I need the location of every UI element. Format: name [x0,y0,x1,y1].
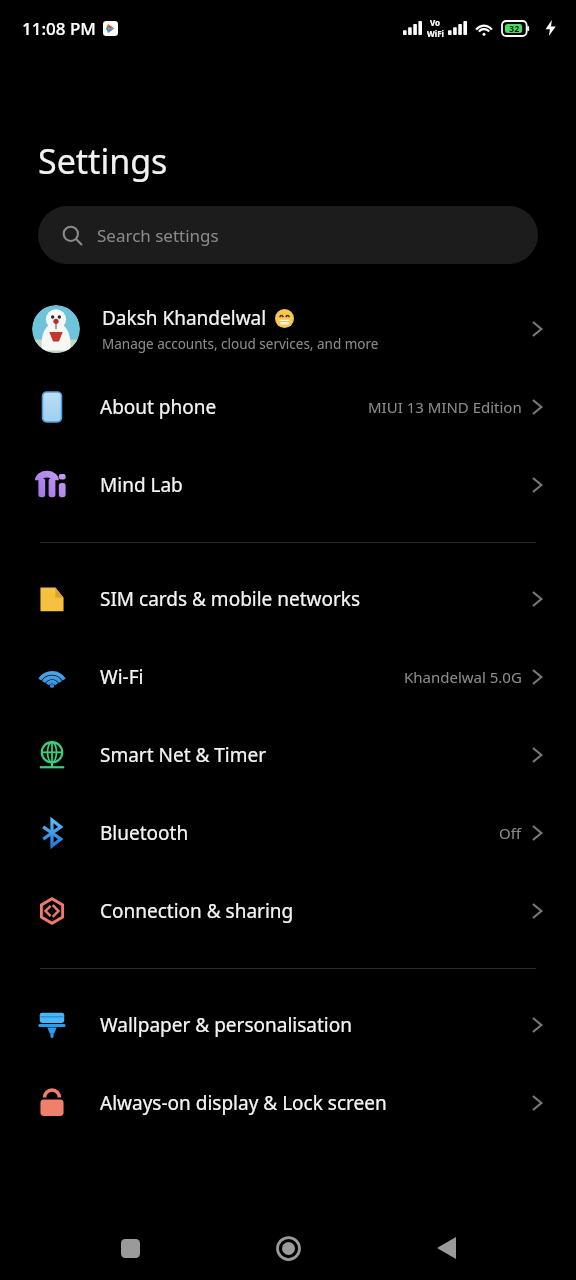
staticText: Manage accounts, cloud services, and mor… [102,335,379,353]
staticText: Wi-Fi [100,664,144,690]
staticText: Off [499,823,522,843]
staticText: Wallpaper & personalisation [100,1012,352,1038]
staticText: Bluetooth [100,820,189,846]
staticText: MIUI 13 MIND Edition [368,397,522,417]
staticText: About phone [100,394,217,420]
staticText: Settings [38,138,168,184]
staticText: Khandelwal 5.0G [404,667,522,687]
staticText: Vo [430,17,441,28]
button[interactable]: Bluetooth [0,794,576,872]
button[interactable]: SIM cards & mobile networks [0,560,576,638]
staticText: Mind Lab [100,472,183,498]
button[interactable]: Mind Lab [0,446,576,524]
staticText: 32 [509,22,520,34]
button[interactable]: Daksh Khandelwal [0,290,576,368]
button[interactable]: Home [260,1220,316,1276]
button[interactable]: Back [418,1220,474,1276]
staticText: Search settings [97,224,219,247]
button[interactable]: Connection & sharing [0,872,576,950]
staticText: SIM cards & mobile networks [100,586,361,612]
button[interactable]: Smart Net & Timer [0,716,576,794]
button[interactable]: Wi-Fi [0,638,576,716]
staticText: Daksh Khandelwal [102,305,267,331]
staticText: Always-on display & Lock screen [100,1090,387,1116]
staticText: WiFi [427,28,444,39]
button[interactable]: About phone [0,368,576,446]
staticText: 11:08 PM [22,17,96,40]
button[interactable]: Always-on display & Lock screen [0,1064,576,1142]
button[interactable]: Search settings [38,206,538,264]
staticText: Connection & sharing [100,898,294,924]
button[interactable]: Recent apps [102,1220,158,1276]
staticText: Smart Net & Timer [100,742,267,768]
button[interactable]: Wallpaper & personalisation [0,986,576,1064]
